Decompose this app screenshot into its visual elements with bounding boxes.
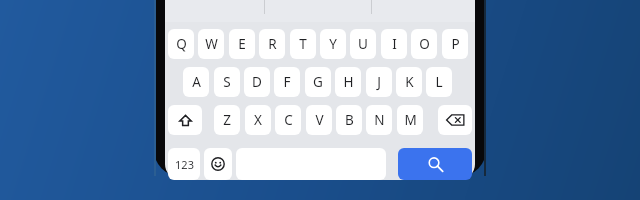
- staticText: U: [358, 35, 368, 53]
- button[interactable]: V: [306, 105, 332, 135]
- staticText: R: [268, 35, 277, 53]
- staticText: D: [252, 73, 262, 91]
- staticText: P: [451, 35, 460, 53]
- button[interactable]: U: [350, 29, 376, 59]
- button[interactable]: E: [229, 29, 255, 59]
- staticText: W: [205, 35, 218, 53]
- staticText: E: [238, 35, 246, 53]
- staticText: I: [392, 35, 397, 53]
- button[interactable]: O: [411, 29, 437, 59]
- button[interactable]: P: [442, 29, 468, 59]
- staticText: X: [254, 111, 262, 129]
- staticText: J: [377, 73, 381, 91]
- button[interactable]: Emoji: [204, 148, 232, 180]
- staticText: V: [315, 111, 324, 129]
- button[interactable]: I: [381, 29, 407, 59]
- staticText: 123: [175, 157, 194, 172]
- button[interactable]: C: [275, 105, 301, 135]
- button[interactable]: F: [274, 67, 300, 97]
- button[interactable]: J: [366, 67, 392, 97]
- staticText: C: [284, 111, 293, 129]
- button[interactable]: Search: [398, 148, 472, 180]
- button[interactable]: Shift: [168, 105, 202, 135]
- button[interactable]: Q: [168, 29, 194, 59]
- button[interactable]: G: [305, 67, 331, 97]
- button[interactable]: M: [397, 105, 423, 135]
- button[interactable]: R: [259, 29, 285, 59]
- button[interactable]: B: [336, 105, 362, 135]
- button[interactable]: Backspace: [438, 105, 472, 135]
- staticText: L: [435, 73, 443, 91]
- staticText: T: [299, 35, 307, 53]
- button[interactable]: H: [335, 67, 361, 97]
- button[interactable]: D: [244, 67, 270, 97]
- staticText: Z: [223, 111, 231, 129]
- button[interactable]: X: [245, 105, 271, 135]
- staticText: Q: [176, 35, 187, 53]
- staticText: N: [374, 111, 385, 129]
- staticText: H: [343, 73, 354, 91]
- staticText: Y: [329, 35, 337, 53]
- staticText: B: [345, 111, 354, 129]
- staticText: A: [192, 73, 201, 91]
- staticText: S: [223, 73, 231, 91]
- button[interactable]: A: [183, 67, 209, 97]
- button[interactable]: 123: [168, 148, 200, 180]
- staticText: K: [405, 73, 414, 91]
- button[interactable]: W: [198, 29, 224, 59]
- staticText: F: [283, 73, 291, 91]
- button[interactable]: N: [366, 105, 392, 135]
- button[interactable]: T: [290, 29, 316, 59]
- button[interactable]: S: [214, 67, 240, 97]
- staticText: O: [419, 35, 430, 53]
- button[interactable]: L: [426, 67, 452, 97]
- button[interactable]: K: [396, 67, 422, 97]
- button[interactable]: Z: [214, 105, 240, 135]
- staticText: G: [313, 73, 323, 91]
- button[interactable]: Y: [320, 29, 346, 59]
- staticText: M: [404, 111, 417, 129]
